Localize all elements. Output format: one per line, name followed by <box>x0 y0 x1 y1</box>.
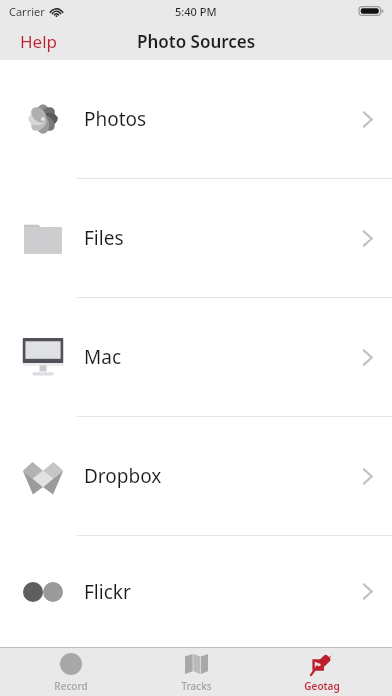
button[interactable]: Files <box>0 179 392 297</box>
button[interactable]: Tracks <box>141 648 251 696</box>
staticText: 5:40 PM <box>175 4 217 19</box>
button[interactable]: Record <box>16 648 126 696</box>
button[interactable]: Photos <box>0 60 392 178</box>
staticText: Flickr <box>84 579 131 605</box>
other: Tracks <box>185 654 208 674</box>
staticText: Dropbox <box>84 463 162 489</box>
staticText: Carrier <box>9 4 45 19</box>
button[interactable]: Help <box>0 24 78 59</box>
staticText: Photo Sources <box>137 30 256 53</box>
staticText: Tracks <box>181 679 212 693</box>
staticText: Help <box>20 30 58 53</box>
button[interactable]: Geotag <box>267 648 377 696</box>
button[interactable]: Mac <box>0 298 392 416</box>
staticText: Geotag <box>304 679 340 693</box>
staticText: Record <box>54 679 88 693</box>
staticText: Mac <box>84 344 122 370</box>
staticText: Photos <box>84 106 147 132</box>
button[interactable]: Flickr <box>0 536 392 647</box>
button[interactable]: Dropbox <box>0 417 392 535</box>
other: Geotag <box>310 652 334 676</box>
other: Record <box>60 653 82 675</box>
staticText: Files <box>84 225 124 251</box>
